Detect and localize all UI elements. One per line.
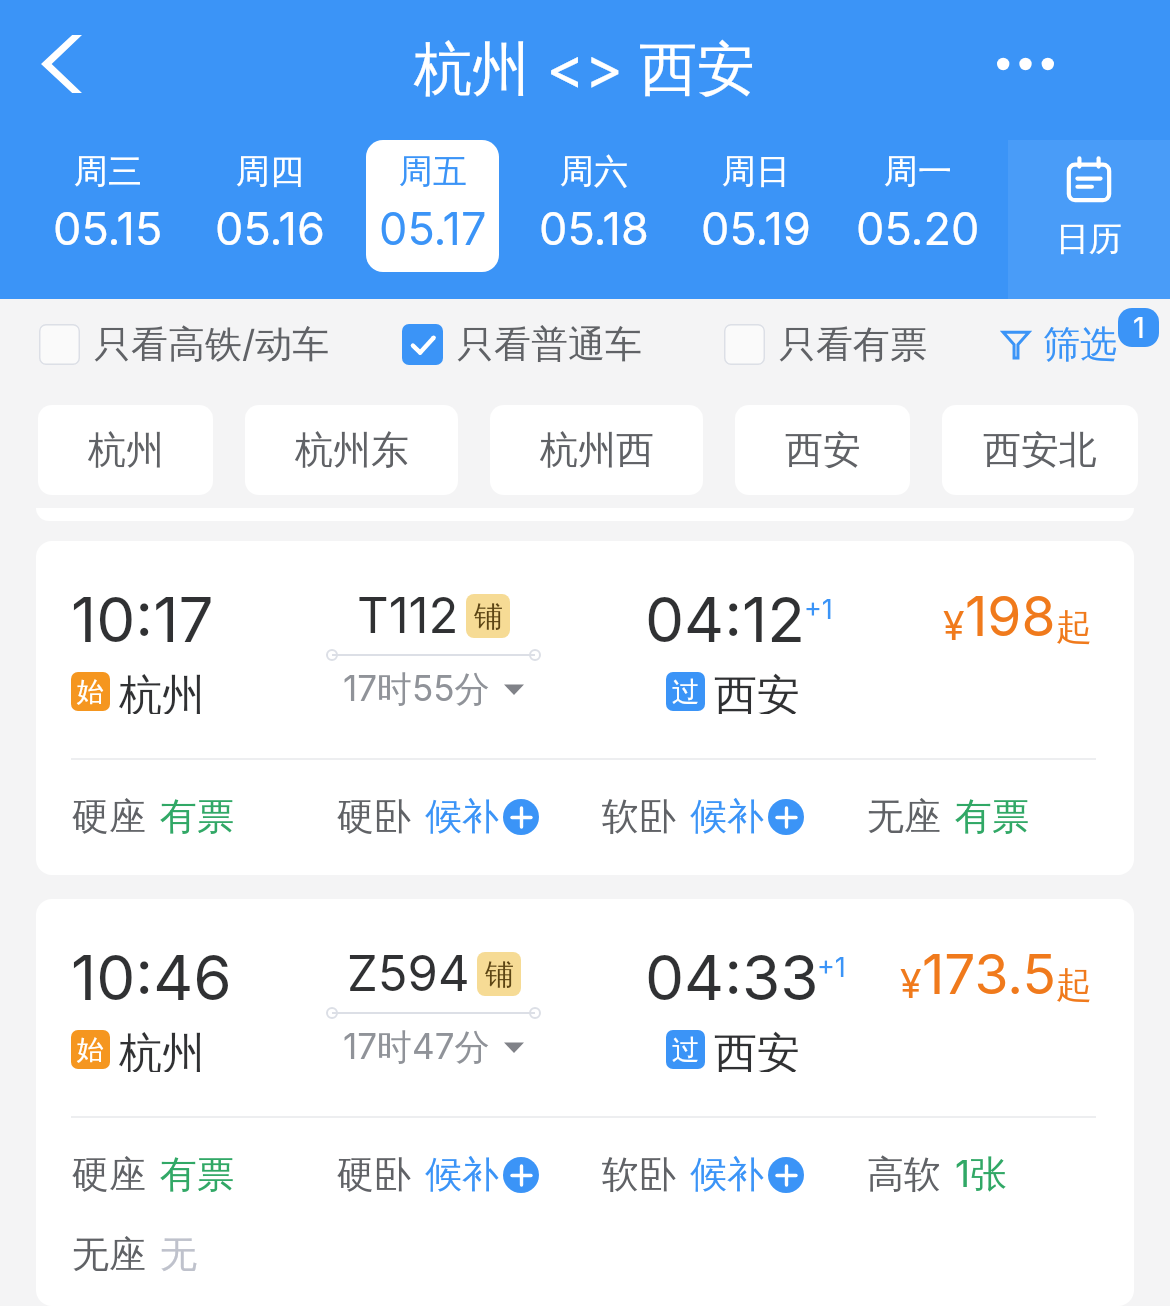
button[interactable]: 10:17 <box>36 541 1134 875</box>
staticText: 198 <box>965 583 1056 650</box>
staticText: 硬卧 <box>337 793 411 840</box>
staticText: 周五 <box>399 150 467 193</box>
staticText: 杭州 <box>119 669 205 714</box>
button[interactable]: 周五 <box>366 140 499 272</box>
staticText: 04:12 <box>645 582 806 657</box>
button[interactable]: Back <box>19 22 103 106</box>
staticText: +1 <box>804 593 833 626</box>
staticText: 硬座 <box>72 1151 146 1198</box>
staticText: 17时55分 <box>343 667 490 711</box>
staticText: 周三 <box>74 150 142 193</box>
staticText: 杭州 <box>119 1027 205 1072</box>
staticText: 硬座 <box>72 793 146 840</box>
staticText: 杭州 <> 西安 <box>414 33 756 106</box>
staticText: 有票 <box>160 1151 234 1198</box>
staticText: 铺 <box>474 598 503 635</box>
staticText: 有票 <box>160 793 234 840</box>
button[interactable]: 只看普通车 <box>402 301 642 387</box>
staticText: 候补 <box>425 793 499 840</box>
staticText: 候补 <box>690 1151 764 1198</box>
staticText: 05.19 <box>701 201 811 255</box>
staticText: 10:17 <box>71 582 214 657</box>
staticText: ¥ <box>900 960 922 1007</box>
staticText: 周四 <box>236 150 304 193</box>
staticText: 04:33 <box>645 940 819 1015</box>
staticText: 无座 <box>72 1231 146 1278</box>
staticText: 1张 <box>955 1151 1008 1198</box>
staticText: 软卧 <box>602 1151 676 1198</box>
staticText: 17时47分 <box>343 1025 490 1069</box>
button[interactable]: 西安北 <box>942 405 1138 495</box>
button[interactable]: 10:46 <box>36 899 1134 1306</box>
staticText: 05.16 <box>215 201 325 255</box>
staticText: 1 <box>1133 310 1145 345</box>
button[interactable]: 日历 <box>1008 140 1170 299</box>
staticText: 无座 <box>867 793 941 840</box>
staticText: 过 <box>672 1033 699 1067</box>
button[interactable]: More options <box>983 22 1067 106</box>
staticText: 杭州西 <box>540 426 654 474</box>
button[interactable]: 西安 <box>735 405 910 495</box>
staticText: 只看普通车 <box>457 321 642 368</box>
staticText: 05.15 <box>53 201 163 255</box>
staticText: T112 <box>357 586 459 645</box>
button[interactable]: 周六 <box>513 140 675 272</box>
staticText: 始 <box>77 1033 104 1067</box>
staticText: 硬卧 <box>337 1151 411 1198</box>
staticText: 173.5 <box>922 941 1056 1008</box>
staticText: 日历 <box>1056 218 1122 260</box>
button[interactable]: 周四 <box>189 140 351 272</box>
staticText: +1 <box>817 951 846 984</box>
staticText: 无 <box>160 1231 197 1278</box>
button[interactable]: 周三 <box>27 140 189 272</box>
staticText: 10:46 <box>71 940 232 1015</box>
button[interactable]: 周日 <box>675 140 837 272</box>
staticText: 05.17 <box>379 201 487 255</box>
button[interactable]: 只看高铁/动车 <box>39 301 330 387</box>
staticText: 只看高铁/动车 <box>94 321 330 368</box>
staticText: 05.20 <box>856 201 980 255</box>
staticText: 周一 <box>884 150 952 193</box>
staticText: 周日 <box>722 150 790 193</box>
staticText: 铺 <box>485 956 514 993</box>
staticText: 只看有票 <box>779 321 927 368</box>
staticText: 起 <box>1056 962 1092 1007</box>
staticText: 西安 <box>714 1027 800 1072</box>
staticText: 杭州东 <box>295 426 409 474</box>
staticText: 西安 <box>785 426 861 474</box>
staticText: ¥ <box>943 602 965 649</box>
staticText: 西安北 <box>983 426 1097 474</box>
staticText: 高软 <box>867 1151 941 1198</box>
staticText: 候补 <box>690 793 764 840</box>
staticText: Z594 <box>347 944 470 1003</box>
staticText: 过 <box>672 675 699 709</box>
button[interactable]: 杭州东 <box>245 405 458 495</box>
staticText: 周六 <box>560 150 628 193</box>
staticText: 软卧 <box>602 793 676 840</box>
button[interactable]: 周一 <box>837 140 999 272</box>
staticText: 05.18 <box>539 201 649 255</box>
staticText: 杭州 <box>88 426 164 474</box>
button[interactable]: 杭州西 <box>490 405 703 495</box>
staticText: 西安 <box>714 669 800 714</box>
button[interactable]: 只看有票 <box>724 301 927 387</box>
staticText: 有票 <box>955 793 1029 840</box>
staticText: 起 <box>1056 604 1092 649</box>
button[interactable]: 筛选 <box>1002 291 1158 397</box>
staticText: 始 <box>77 675 104 709</box>
button[interactable]: 杭州 <box>38 405 213 495</box>
staticText: 筛选 <box>1043 321 1117 368</box>
staticText: 候补 <box>425 1151 499 1198</box>
